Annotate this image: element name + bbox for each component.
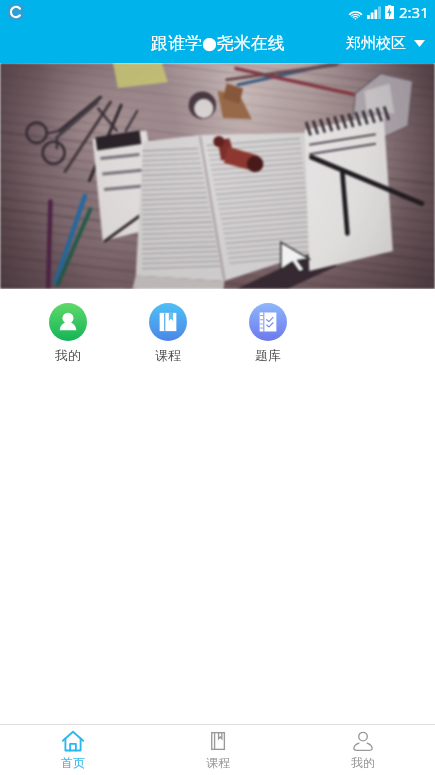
- button[interactable]: 郑州校区: [346, 34, 425, 53]
- button[interactable]: 题库: [218, 303, 318, 363]
- button[interactable]: Banner: [0, 63, 435, 289]
- staticText: 跟谁学●尧米在线: [151, 33, 285, 54]
- staticText: 2:31: [399, 2, 429, 22]
- staticText: 我的: [55, 347, 81, 363]
- button[interactable]: 首页: [0, 725, 145, 775]
- staticText: 首页: [61, 755, 85, 770]
- staticText: 题库: [255, 347, 281, 363]
- button[interactable]: 课程: [118, 303, 218, 363]
- button[interactable]: 我的: [290, 725, 435, 775]
- staticText: 课程: [155, 347, 181, 363]
- button[interactable]: 课程: [145, 725, 290, 775]
- staticText: 我的: [351, 755, 375, 770]
- staticText: 郑州校区: [346, 34, 406, 53]
- button[interactable]: 我的: [18, 303, 118, 363]
- staticText: 课程: [206, 755, 230, 770]
